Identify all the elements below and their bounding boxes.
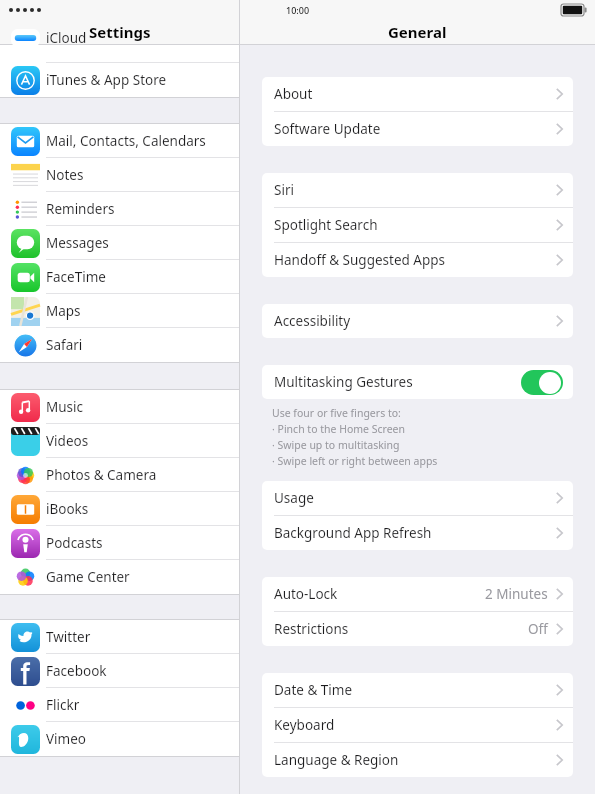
button[interactable]: iCloud <box>0 45 239 63</box>
staticText: Usage <box>274 489 314 507</box>
staticText: Date & Time <box>274 681 353 699</box>
button[interactable]: Multitasking Gestures <box>262 365 573 399</box>
other: Battery <box>561 4 587 16</box>
button[interactable]: Photos & Camera <box>0 458 239 492</box>
staticText: Restrictions <box>274 620 349 638</box>
staticText: Vimeo <box>46 730 86 748</box>
staticText: iBooks <box>46 500 89 518</box>
staticText: · Swipe up to multitasking <box>272 438 400 452</box>
button[interactable]: Background App Refresh <box>262 516 573 550</box>
staticText: Videos <box>46 432 89 450</box>
staticText: Handoff & Suggested Apps <box>274 251 446 269</box>
button[interactable]: Restrictions <box>262 612 573 646</box>
button[interactable]: iTunes & App Store <box>0 63 239 97</box>
button[interactable]: Auto-Lock <box>262 577 573 611</box>
staticText: Mail, Contacts, Calendars <box>46 132 206 150</box>
button[interactable]: Maps <box>0 294 239 328</box>
button[interactable]: Siri <box>262 173 573 207</box>
staticText: Photos & Camera <box>46 466 157 484</box>
button[interactable]: Language & Region <box>262 743 573 777</box>
button[interactable]: Date & Time <box>262 673 573 707</box>
staticText: iCloud <box>46 29 87 47</box>
button[interactable]: Music <box>0 390 239 424</box>
staticText: Spotlight Search <box>274 216 378 234</box>
staticText: Maps <box>46 302 81 320</box>
staticText: Accessibility <box>274 312 351 330</box>
staticText: FaceTime <box>46 268 106 286</box>
staticText: · Pinch to the Home Screen <box>272 422 406 436</box>
button[interactable]: Game Center <box>0 560 239 594</box>
staticText: Game Center <box>46 568 130 586</box>
staticText: 10:00 <box>286 4 310 16</box>
button[interactable]: Software Update <box>262 112 573 146</box>
button[interactable]: Keyboard <box>262 708 573 742</box>
staticText: Multitasking Gestures <box>274 373 413 391</box>
button[interactable]: Safari <box>0 328 239 362</box>
button[interactable]: Accessibility <box>262 304 573 338</box>
staticText: Settings <box>89 22 151 42</box>
staticText: Messages <box>46 234 109 252</box>
staticText: Flickr <box>46 696 80 714</box>
staticText: Podcasts <box>46 534 103 552</box>
staticText: 2 Minutes <box>485 585 548 603</box>
button[interactable]: Videos <box>0 424 239 458</box>
staticText: General <box>388 22 447 42</box>
staticText: Software Update <box>274 120 381 138</box>
button[interactable]: Handoff & Suggested Apps <box>262 243 573 277</box>
button[interactable]: Vimeo <box>0 722 239 756</box>
staticText: Music <box>46 398 84 416</box>
staticText: Safari <box>46 336 83 354</box>
staticText: iTunes & App Store <box>46 71 167 89</box>
button[interactable]: Facebook <box>0 654 239 688</box>
button[interactable]: Messages <box>0 226 239 260</box>
staticText: Auto-Lock <box>274 585 338 603</box>
button[interactable]: Podcasts <box>0 526 239 560</box>
staticText: Off <box>528 620 548 638</box>
button[interactable]: Spotlight Search <box>262 208 573 242</box>
staticText: Twitter <box>46 628 91 646</box>
staticText: Siri <box>274 181 294 199</box>
staticText: Reminders <box>46 200 115 218</box>
button[interactable]: Usage <box>262 481 573 515</box>
staticText: Keyboard <box>274 716 335 734</box>
staticText: Background App Refresh <box>274 524 432 542</box>
button[interactable]: FaceTime <box>0 260 239 294</box>
button[interactable]: Multitasking Gestures, on <box>521 370 563 395</box>
button[interactable]: Mail, Contacts, Calendars <box>0 124 239 158</box>
button[interactable]: Twitter <box>0 620 239 654</box>
staticText: Facebook <box>46 662 107 680</box>
button[interactable]: About <box>262 77 573 111</box>
button[interactable]: Flickr <box>0 688 239 722</box>
button[interactable]: Reminders <box>0 192 239 226</box>
staticText: About <box>274 85 313 103</box>
staticText: Use four or five fingers to: <box>272 406 401 420</box>
staticText: · Swipe left or right between apps <box>272 454 438 468</box>
button[interactable]: iBooks <box>0 492 239 526</box>
button[interactable]: Notes <box>0 158 239 192</box>
staticText: Language & Region <box>274 751 399 769</box>
staticText: Notes <box>46 166 84 184</box>
